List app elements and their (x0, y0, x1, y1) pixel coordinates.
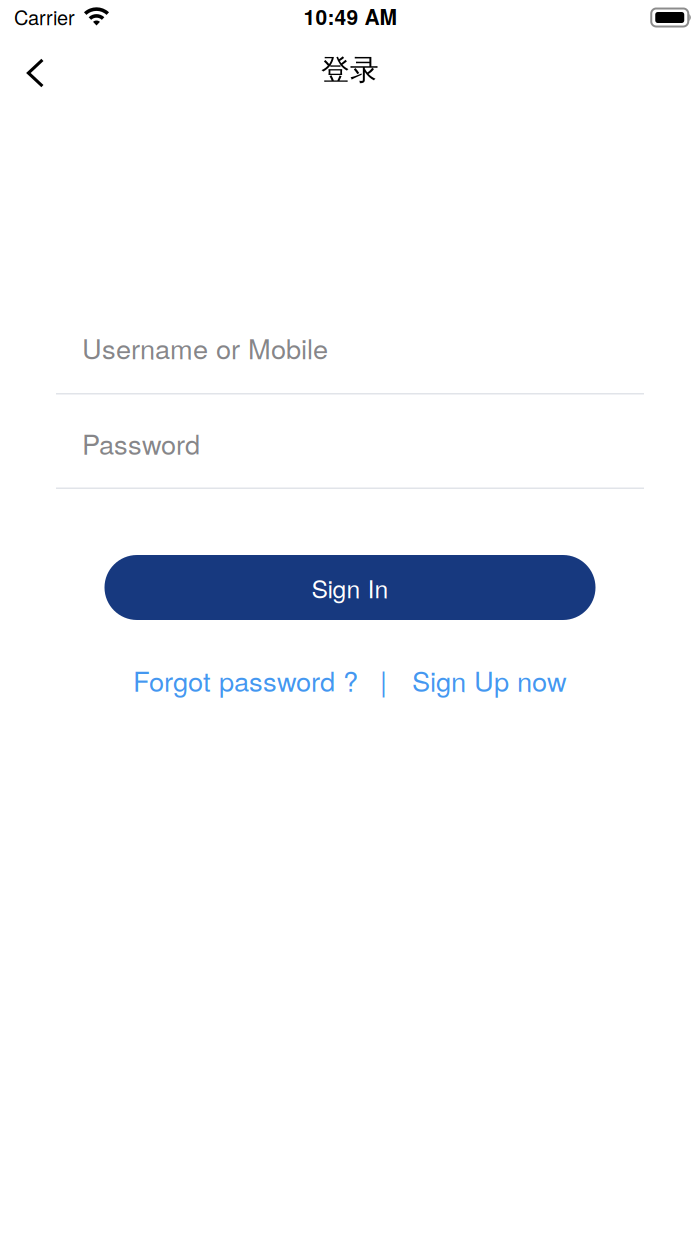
button[interactable]: Sign In (104, 555, 595, 620)
staticText: Carrier (14, 2, 75, 31)
staticText: | (380, 661, 387, 699)
button[interactable]: Forgot password ? (133, 660, 358, 699)
staticText: Username or Mobile (82, 328, 328, 367)
staticText: 登录 (321, 52, 379, 88)
button[interactable]: Sign Up now (412, 660, 567, 699)
staticText: Sign In (311, 570, 388, 605)
staticText: Password (82, 423, 200, 462)
staticText: 10:49 AM (303, 1, 396, 32)
staticText: Forgot password ? (133, 660, 358, 699)
button[interactable] (26, 57, 45, 86)
staticText: Sign Up now (412, 660, 567, 699)
